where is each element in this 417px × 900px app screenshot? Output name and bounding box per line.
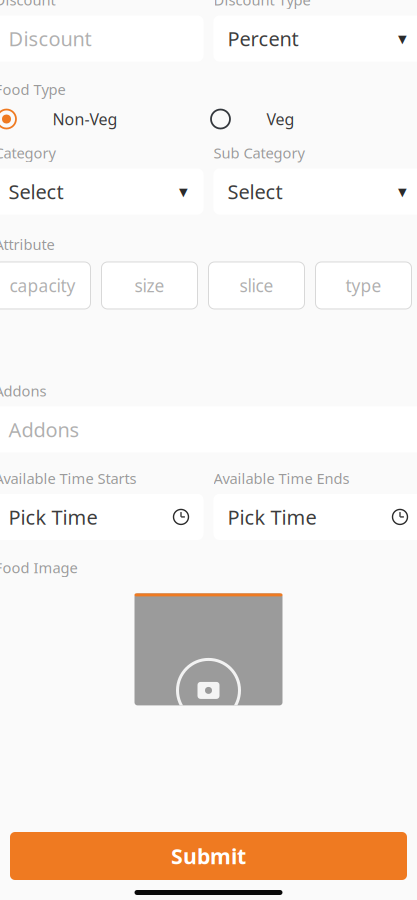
staticText: slice bbox=[239, 274, 273, 297]
button[interactable]: Discount bbox=[0, 15, 203, 61]
button[interactable]: Pick Time bbox=[213, 494, 417, 540]
button[interactable]: Non-Veg bbox=[0, 107, 208, 131]
staticText: size bbox=[134, 274, 164, 297]
staticText: Available Time Ends bbox=[213, 468, 349, 488]
staticText: Category bbox=[0, 143, 55, 162]
button[interactable]: capacity bbox=[0, 262, 90, 309]
staticText: Discount bbox=[0, 0, 55, 10]
staticText: Food Image bbox=[0, 558, 77, 577]
staticText: type bbox=[345, 274, 381, 297]
staticText: capacity bbox=[9, 274, 75, 297]
button[interactable]: size bbox=[101, 262, 197, 309]
staticText: Food Type bbox=[0, 79, 65, 99]
staticText: Sub Category bbox=[213, 143, 304, 162]
staticText: Attribute bbox=[0, 234, 54, 254]
staticText: Veg bbox=[266, 108, 294, 130]
staticText: Non-Veg bbox=[52, 108, 117, 130]
staticText: Addons bbox=[0, 381, 46, 400]
staticText: ▾ bbox=[398, 182, 407, 201]
button[interactable]: Add food image bbox=[134, 585, 282, 705]
staticText: Discount Type bbox=[213, 0, 310, 10]
button[interactable]: type bbox=[315, 262, 411, 309]
button[interactable]: Select bbox=[213, 168, 417, 214]
staticText: Pick Time bbox=[8, 504, 97, 530]
staticText: ▾ bbox=[398, 29, 407, 48]
button[interactable]: Addons bbox=[0, 406, 417, 452]
staticText: Pick Time bbox=[227, 504, 316, 530]
button[interactable]: Select bbox=[0, 168, 203, 214]
staticText: Addons bbox=[8, 416, 79, 443]
staticText: Submit bbox=[171, 842, 246, 870]
button[interactable]: Percent bbox=[213, 15, 417, 61]
staticText: Select bbox=[8, 178, 63, 205]
staticText: Percent bbox=[227, 25, 298, 52]
button[interactable]: slice bbox=[208, 262, 304, 309]
button[interactable]: Submit bbox=[10, 832, 407, 880]
button[interactable]: Pick Time bbox=[0, 494, 203, 540]
staticText: Select bbox=[227, 178, 282, 205]
staticText: Discount bbox=[8, 25, 91, 52]
button[interactable]: Veg bbox=[208, 107, 417, 131]
staticText: ▾ bbox=[179, 182, 188, 201]
staticText: Available Time Starts bbox=[0, 468, 136, 488]
